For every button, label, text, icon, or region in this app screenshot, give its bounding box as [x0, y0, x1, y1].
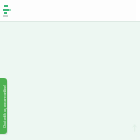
button[interactable]: Home — [2, 3, 11, 18]
button[interactable]: Chat with us, we are online — [0, 78, 7, 134]
staticText: Chat with us, we are online! — [1, 81, 6, 131]
